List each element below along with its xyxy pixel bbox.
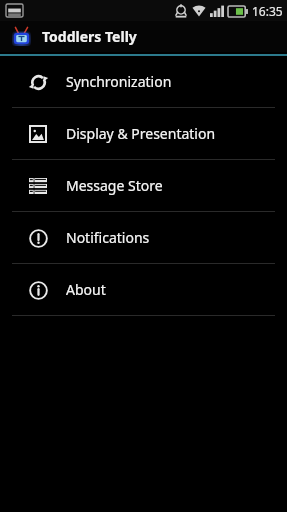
staticText: Synchronization <box>66 72 172 91</box>
button[interactable]: About <box>0 264 287 315</box>
staticText: Message Store <box>66 176 163 195</box>
staticText: Notifications <box>66 228 150 247</box>
button[interactable]: Notifications <box>0 212 287 263</box>
staticText: Toddlers Telly <box>42 27 137 46</box>
staticText: 16:35 <box>252 3 283 19</box>
button[interactable]: Synchronization <box>0 56 287 107</box>
button[interactable]: Display & Presentation <box>0 108 287 159</box>
staticText: Display & Presentation <box>66 124 216 143</box>
staticText: About <box>66 280 106 299</box>
button[interactable]: Toddlers Telly <box>0 21 287 52</box>
button[interactable]: Message Store <box>0 160 287 211</box>
